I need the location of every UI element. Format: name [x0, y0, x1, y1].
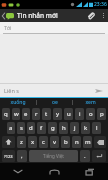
button[interactable]: f [37, 122, 46, 134]
staticText: x [31, 138, 35, 146]
button[interactable]: xem [73, 98, 108, 107]
button[interactable]: e [22, 108, 30, 120]
button[interactable]: Send [90, 84, 108, 97]
staticText: c [42, 138, 45, 146]
button[interactable]: Backspace [94, 136, 106, 148]
staticText: p [100, 110, 104, 118]
button[interactable]: c [39, 136, 48, 148]
button[interactable]: r [32, 108, 40, 120]
staticText: m [85, 138, 91, 146]
button[interactable]: u [64, 108, 73, 120]
button[interactable]: Tiếng Việt [29, 150, 78, 162]
staticText: , [21, 152, 23, 160]
button[interactable]: j [70, 122, 79, 134]
staticText: Tin nhắn mới [17, 11, 58, 20]
staticText: . [84, 152, 86, 160]
button[interactable]: Recent apps [72, 163, 108, 180]
button[interactable]: Liên s [0, 84, 90, 97]
button[interactable]: d [27, 122, 35, 134]
staticText: w [14, 110, 19, 118]
button[interactable]: v [50, 136, 59, 148]
button[interactable]: w [12, 108, 20, 120]
staticText: a [9, 124, 13, 132]
button[interactable]: Attach [84, 9, 98, 22]
staticText: o [89, 110, 93, 118]
staticText: xuống [10, 99, 26, 106]
button[interactable]: q [2, 108, 10, 120]
staticText: ?123 [4, 154, 13, 159]
staticText: Liên s [4, 87, 19, 94]
staticText: 23:36 [94, 1, 107, 8]
staticText: i [79, 110, 81, 118]
staticText: h [62, 124, 66, 132]
staticText: j [74, 124, 76, 132]
staticText: r [35, 110, 38, 118]
button[interactable]: Back [0, 163, 36, 180]
staticText: q [4, 110, 8, 118]
button[interactable]: Home [36, 163, 72, 180]
button[interactable]: Shift [2, 136, 15, 148]
button[interactable]: xuống [0, 98, 36, 107]
staticText: b [64, 138, 68, 146]
staticText: n [75, 138, 79, 146]
staticText: d [29, 124, 33, 132]
button[interactable]: Tới [0, 22, 108, 34]
button[interactable]: l [92, 122, 101, 134]
button[interactable]: More options [98, 9, 108, 22]
button[interactable]: Back [0, 9, 16, 22]
staticText: y [56, 110, 60, 118]
staticText: oe [52, 99, 58, 106]
staticText: k [84, 124, 88, 132]
staticText: g [51, 124, 55, 132]
button[interactable]: b [61, 136, 70, 148]
button[interactable]: h [59, 122, 68, 134]
staticText: z [20, 138, 23, 146]
button[interactable]: Symbols [2, 150, 15, 162]
button[interactable]: g [48, 122, 57, 134]
staticText: xem [85, 99, 96, 106]
button[interactable]: z [17, 136, 26, 148]
button[interactable]: , [17, 150, 27, 162]
staticText: u [67, 110, 71, 118]
staticText: Tới [4, 24, 12, 31]
staticText: s [20, 124, 23, 132]
staticText: l [96, 124, 98, 132]
button[interactable]: . [80, 150, 90, 162]
button[interactable]: t [42, 108, 51, 120]
button[interactable]: o [86, 108, 95, 120]
button[interactable]: oe [37, 98, 72, 107]
staticText: t [45, 110, 48, 118]
button[interactable]: y [53, 108, 62, 120]
button[interactable]: Enter [92, 150, 106, 162]
button[interactable]: n [72, 136, 81, 148]
staticText: v [53, 138, 57, 146]
button[interactable]: a [7, 122, 15, 134]
button[interactable]: m [83, 136, 92, 148]
button[interactable]: s [17, 122, 25, 134]
button[interactable]: k [81, 122, 90, 134]
staticText: Tiếng Việt [43, 153, 64, 159]
button[interactable]: p [97, 108, 106, 120]
staticText: e [24, 110, 28, 118]
button[interactable]: x [28, 136, 37, 148]
button[interactable]: i [75, 108, 84, 120]
staticText: f [40, 124, 43, 132]
